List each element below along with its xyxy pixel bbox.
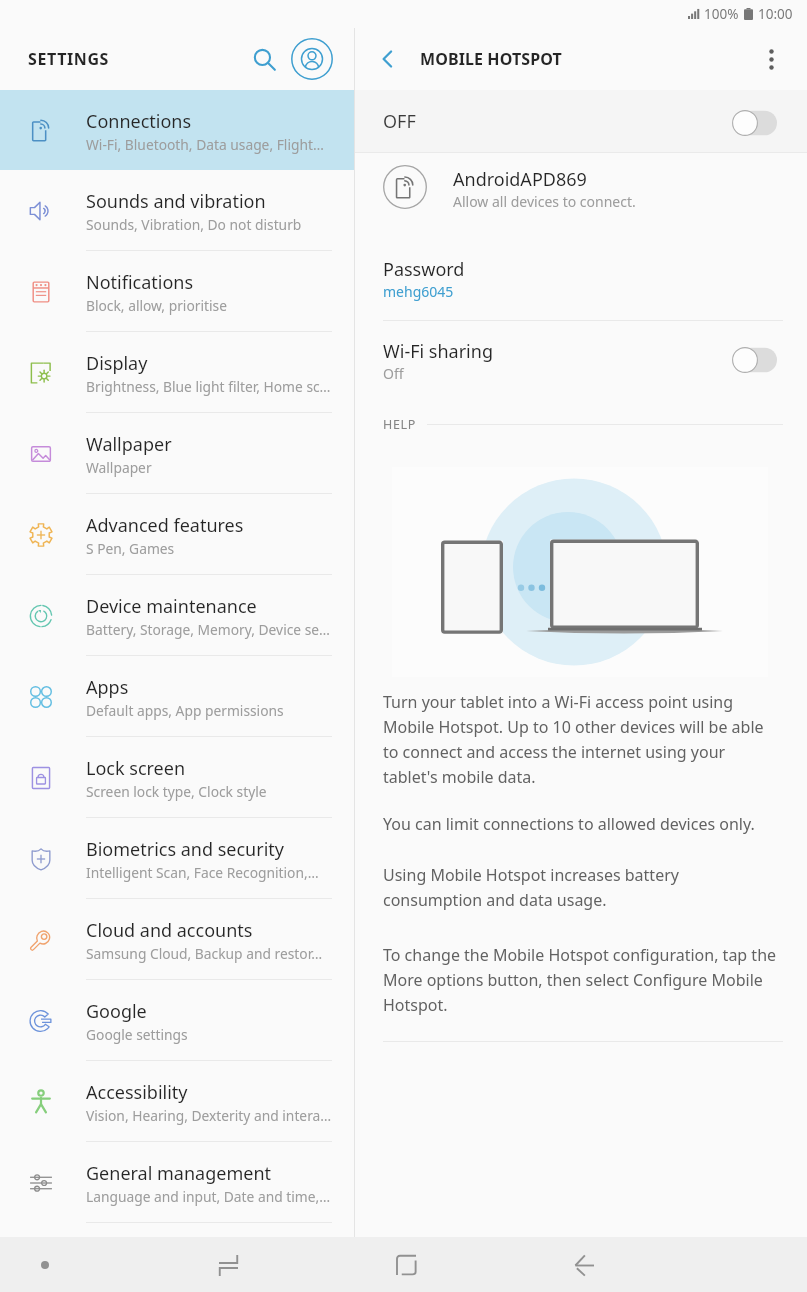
staticText: General management xyxy=(86,1161,272,1186)
staticText: Connections xyxy=(86,109,192,134)
staticText: Wallpaper xyxy=(86,432,172,457)
button[interactable]: Apps xyxy=(0,656,354,737)
button[interactable]: Advanced features xyxy=(0,494,354,575)
staticText: Advanced features xyxy=(86,513,244,538)
button[interactable]: Cloud and accounts xyxy=(0,899,354,980)
button[interactable]: Navigate up xyxy=(371,42,405,76)
staticText: Battery, Storage, Memory, Device se… xyxy=(86,620,330,639)
staticText: Wi-Fi, Bluetooth, Data usage, Flight… xyxy=(86,135,324,154)
staticText: 100% xyxy=(704,5,739,23)
button[interactable]: Home xyxy=(384,1243,428,1287)
button[interactable]: Notifications xyxy=(0,251,354,332)
button[interactable]: Toggle xyxy=(732,347,777,373)
staticText: Language and input, Date and time,… xyxy=(86,1187,331,1206)
button[interactable]: Hide keyboard xyxy=(25,1245,65,1285)
staticText: Block, allow, prioritise xyxy=(86,296,227,315)
staticText: Google settings xyxy=(86,1025,188,1044)
staticText: Sounds and vibration xyxy=(86,189,266,214)
staticText: You can limit connections to allowed dev… xyxy=(383,813,755,835)
button[interactable]: Device maintenance xyxy=(0,575,354,656)
staticText: Wi-Fi sharing xyxy=(383,339,493,364)
button[interactable]: Accessibility xyxy=(0,1061,354,1142)
staticText: Turn your tablet into a Wi-Fi access poi… xyxy=(383,691,779,787)
staticText: MOBILE HOTSPOT xyxy=(420,48,562,70)
staticText: Sounds, Vibration, Do not disturb xyxy=(86,215,302,234)
staticText: Cloud and accounts xyxy=(86,918,253,943)
button[interactable]: More options xyxy=(753,41,789,77)
staticText: HELP xyxy=(383,416,417,433)
button[interactable]: Account xyxy=(289,36,335,82)
staticText: Screen lock type, Clock style xyxy=(86,782,267,801)
staticText: SETTINGS xyxy=(28,48,109,70)
button[interactable]: Sounds and vibration xyxy=(0,170,354,251)
staticText: Biometrics and security xyxy=(86,837,284,862)
button[interactable]: Google xyxy=(0,980,354,1061)
button[interactable]: Connections xyxy=(0,90,354,170)
button[interactable]: Wallpaper xyxy=(0,413,354,494)
button[interactable]: Display xyxy=(0,332,354,413)
staticText: Google xyxy=(86,999,147,1024)
staticText: Vision, Hearing, Dexterity and intera… xyxy=(86,1106,332,1125)
staticText: Off xyxy=(383,364,404,383)
button[interactable]: Password xyxy=(355,239,807,321)
staticText: Display xyxy=(86,351,148,376)
staticText: Samsung Cloud, Backup and restor… xyxy=(86,944,323,963)
staticText: Intelligent Scan, Face Recognition,… xyxy=(86,863,319,882)
button[interactable]: Lock screen xyxy=(0,737,354,818)
button[interactable]: Recents xyxy=(206,1243,250,1287)
button[interactable]: Back xyxy=(562,1243,606,1287)
staticText: Using Mobile Hotspot increases battery c… xyxy=(383,864,779,910)
button[interactable]: OFF xyxy=(355,90,807,152)
staticText: AndroidAPD869 xyxy=(453,167,587,192)
staticText: Notifications xyxy=(86,270,194,295)
button[interactable]: Toggle xyxy=(732,110,777,136)
staticText: 10:00 xyxy=(758,5,793,23)
staticText: Password xyxy=(383,257,465,282)
staticText: Allow all devices to connect. xyxy=(453,192,636,211)
button[interactable]: AndroidAPD869 xyxy=(355,153,807,239)
staticText: OFF xyxy=(383,109,416,134)
staticText: Device maintenance xyxy=(86,594,257,619)
staticText: Wallpaper xyxy=(86,458,152,477)
staticText: mehg6045 xyxy=(383,282,454,301)
staticText: S Pen, Games xyxy=(86,539,175,558)
staticText: To change the Mobile Hotspot configurati… xyxy=(383,944,779,1015)
staticText: Apps xyxy=(86,675,129,700)
staticText: Lock screen xyxy=(86,756,186,781)
staticText: Brightness, Blue light filter, Home sc… xyxy=(86,377,331,396)
button[interactable]: General management xyxy=(0,1142,354,1223)
button[interactable]: Wi-Fi sharing xyxy=(355,321,807,399)
staticText: Default apps, App permissions xyxy=(86,701,284,720)
button[interactable]: Biometrics and security xyxy=(0,818,354,899)
staticText: Accessibility xyxy=(86,1080,188,1105)
button[interactable]: Search xyxy=(244,39,284,79)
